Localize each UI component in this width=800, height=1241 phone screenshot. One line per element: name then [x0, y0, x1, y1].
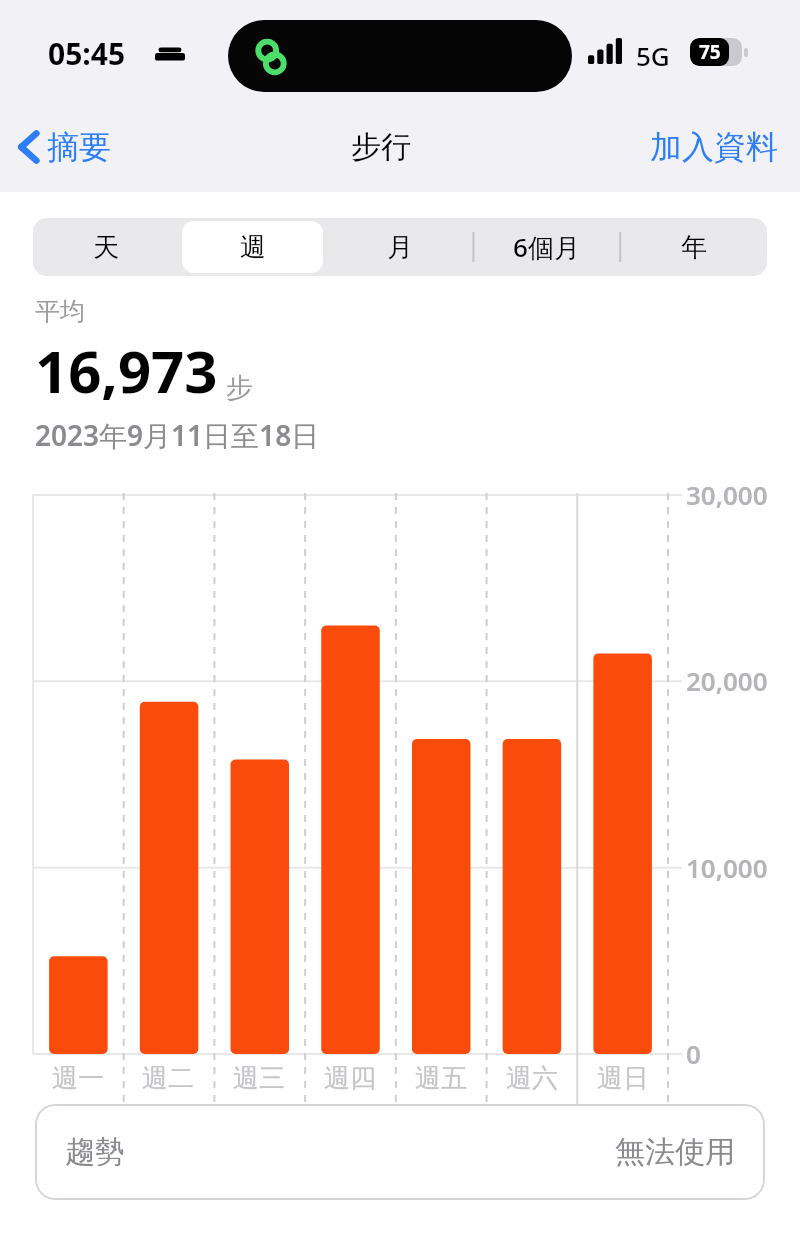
button[interactable]: 天 — [36, 221, 176, 273]
staticText: 月 — [387, 231, 413, 264]
staticText: 週六 — [506, 1062, 558, 1095]
staticText: 0 — [686, 1036, 701, 1071]
staticText: 加入資料 — [650, 127, 778, 167]
staticText: 趨勢 — [65, 1133, 125, 1171]
staticText: 2023年9月11日至18日 — [35, 416, 320, 454]
staticText: 週一 — [52, 1062, 104, 1095]
staticText: 週四 — [324, 1062, 376, 1095]
staticText: 天 — [93, 231, 119, 264]
staticText: 步行 — [351, 128, 411, 166]
button[interactable]: 月 — [329, 221, 470, 273]
button[interactable]: 趨勢 — [35, 1104, 765, 1200]
button[interactable]: 年 — [623, 221, 764, 273]
staticText: 75 — [699, 39, 721, 65]
staticText: 摘要 — [47, 127, 111, 167]
staticText: 週三 — [233, 1062, 285, 1095]
staticText: 無法使用 — [615, 1133, 735, 1171]
staticText: 6個月 — [513, 229, 580, 265]
button[interactable]: 加入資料 — [638, 121, 800, 173]
staticText: 週 — [240, 231, 266, 264]
button[interactable]: 6個月 — [476, 221, 617, 273]
staticText: 週日 — [597, 1062, 649, 1095]
staticText: 步 — [226, 371, 253, 405]
staticText: 10,000 — [686, 850, 768, 885]
staticText: 週五 — [415, 1062, 467, 1095]
staticText: 20,000 — [686, 663, 768, 698]
button[interactable]: 摘要 — [0, 121, 123, 173]
staticText: 年 — [681, 231, 707, 264]
staticText: 05:45 — [48, 33, 126, 74]
button[interactable]: 週 — [182, 221, 323, 273]
staticText: 週二 — [142, 1062, 194, 1095]
staticText: 5G — [636, 38, 670, 73]
staticText: 16,973 — [35, 331, 218, 410]
staticText: 平均 — [35, 296, 85, 327]
staticText: 30,000 — [686, 477, 768, 512]
